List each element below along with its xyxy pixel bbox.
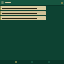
button[interactable] [0, 16, 46, 20]
button[interactable] [0, 6, 46, 10]
button[interactable]: Menu [0, 0, 64, 5]
button[interactable]: Menu [1, 1, 4, 4]
button[interactable] [0, 11, 46, 15]
